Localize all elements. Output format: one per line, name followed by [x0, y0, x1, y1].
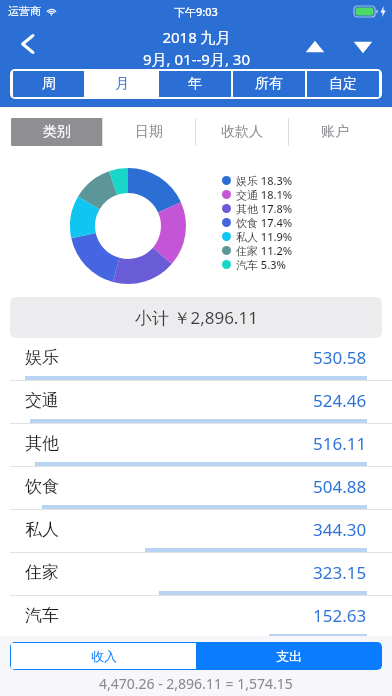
staticText: 所有 — [255, 75, 283, 93]
staticText: 504.88 — [313, 475, 367, 498]
staticText: 其他 — [25, 433, 59, 454]
button[interactable]: 账户 — [289, 118, 381, 146]
staticText: 530.58 — [313, 346, 367, 369]
button[interactable]: 类别 — [11, 118, 102, 146]
staticText: 收入 — [91, 648, 117, 664]
staticText: 周 — [42, 75, 56, 93]
staticText: 9月, 01--9月, 30 — [143, 49, 250, 69]
staticText: 汽车 — [25, 605, 59, 626]
button[interactable]: 所有 — [233, 71, 305, 97]
button[interactable]: 收入 — [11, 643, 196, 669]
staticText: 交通 18.1% — [236, 187, 293, 201]
staticText: 饮食 17.4% — [236, 215, 293, 229]
button[interactable]: 年 — [159, 71, 231, 97]
staticText: 月 — [115, 75, 129, 93]
staticText: 运营商 — [8, 4, 41, 18]
staticText: 4,470.26 - 2,896.11 = 1,574.15 — [99, 674, 293, 693]
staticText: 344.30 — [313, 518, 367, 541]
button[interactable]: 汽车 — [0, 596, 392, 636]
button[interactable]: Previous period — [294, 26, 336, 68]
staticText: 娱乐 — [25, 347, 59, 368]
staticText: 收款人 — [221, 123, 263, 141]
button[interactable]: Next period — [342, 26, 384, 68]
button[interactable]: 收款人 — [196, 118, 288, 146]
staticText: 152.63 — [313, 604, 367, 627]
button[interactable]: 其他 — [0, 424, 392, 467]
staticText: 账户 — [321, 123, 349, 141]
staticText: 类别 — [43, 123, 71, 141]
staticText: 住家 11.2% — [236, 243, 293, 257]
button[interactable]: 自定 — [307, 71, 379, 97]
staticText: 日期 — [135, 123, 163, 141]
button[interactable]: 交通 — [0, 381, 392, 424]
staticText: 年 — [188, 75, 202, 93]
staticText: 汽车 5.3% — [236, 257, 286, 271]
staticText: 516.11 — [313, 432, 367, 455]
button[interactable]: Back — [6, 22, 50, 66]
button[interactable]: 私人 — [0, 510, 392, 553]
staticText: 住家 — [25, 562, 59, 583]
staticText: 524.46 — [313, 389, 367, 412]
button[interactable]: 饮食 — [0, 467, 392, 510]
button[interactable]: 日期 — [103, 118, 195, 146]
staticText: 下午9:03 — [174, 4, 218, 19]
staticText: 饮食 — [25, 476, 59, 497]
staticText: 2018 九月 — [162, 27, 231, 47]
staticText: 自定 — [329, 75, 357, 93]
button[interactable]: 周 — [13, 71, 84, 97]
staticText: 私人 11.9% — [236, 229, 293, 243]
button[interactable]: 住家 — [0, 553, 392, 596]
staticText: 小计 ￥2,896.11 — [135, 306, 258, 329]
staticText: 娱乐 18.3% — [236, 173, 293, 187]
staticText: 323.15 — [313, 561, 367, 584]
staticText: 其他 17.8% — [236, 201, 293, 215]
staticText: 支出 — [276, 648, 302, 664]
button[interactable]: 娱乐 — [0, 338, 392, 381]
staticText: 交通 — [25, 390, 59, 411]
button[interactable]: 支出 — [196, 643, 381, 669]
button[interactable]: 月 — [86, 71, 157, 97]
staticText: 私人 — [25, 519, 59, 540]
